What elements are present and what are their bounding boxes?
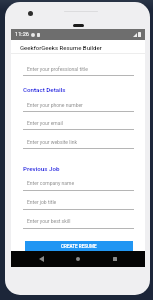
- button[interactable]: Back: [33, 251, 49, 267]
- staticText: Previous Job: [23, 165, 60, 172]
- staticText: Contact Details: [23, 86, 66, 93]
- staticText: Enter job title: [27, 199, 57, 205]
- staticText: Enter your website link: [27, 139, 77, 145]
- button[interactable]: Home: [70, 251, 86, 267]
- button[interactable]: Recents: [107, 251, 123, 267]
- staticText: Enter your best skill: [27, 218, 71, 224]
- staticText: CREATE RESUME: [61, 244, 97, 249]
- button[interactable]: Enter job title: [23, 196, 134, 210]
- staticText: Enter your email: [27, 120, 63, 126]
- staticText: Enter company name: [27, 180, 75, 186]
- staticText: Enter your professional title: [27, 66, 88, 72]
- button[interactable]: Enter your phone number: [23, 99, 134, 112]
- button[interactable]: GeekforGeeks Resume Builder: [11, 40, 145, 55]
- staticText: 11:26: [15, 31, 29, 38]
- button[interactable]: Enter your email: [23, 117, 134, 130]
- staticText: Enter your phone number: [27, 102, 83, 108]
- button[interactable]: Enter company name: [23, 177, 134, 191]
- staticText: GeekforGeeks Resume Builder: [20, 44, 102, 51]
- button[interactable]: Enter your best skill: [23, 215, 134, 229]
- button[interactable]: Enter your professional title: [23, 63, 134, 76]
- button[interactable]: Enter your website link: [23, 136, 134, 149]
- button[interactable]: CREATE RESUME: [25, 241, 133, 251]
